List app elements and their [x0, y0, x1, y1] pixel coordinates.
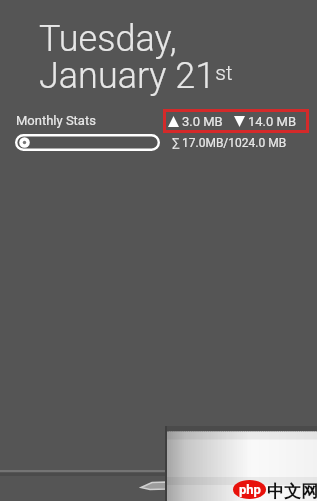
staticText: 中文网	[267, 481, 317, 501]
staticText: Tuesday,	[39, 18, 177, 60]
staticText: 14.0 MB	[248, 114, 297, 129]
staticText: ∑ 17.0MB/1024.0 MB	[172, 136, 287, 150]
staticText: January 21st	[39, 55, 233, 97]
staticText: 3.0 MB	[182, 114, 223, 129]
staticText: php	[239, 482, 261, 497]
staticText: Monthly Stats	[16, 113, 96, 128]
button[interactable]: Monthly data usage	[15, 134, 160, 151]
